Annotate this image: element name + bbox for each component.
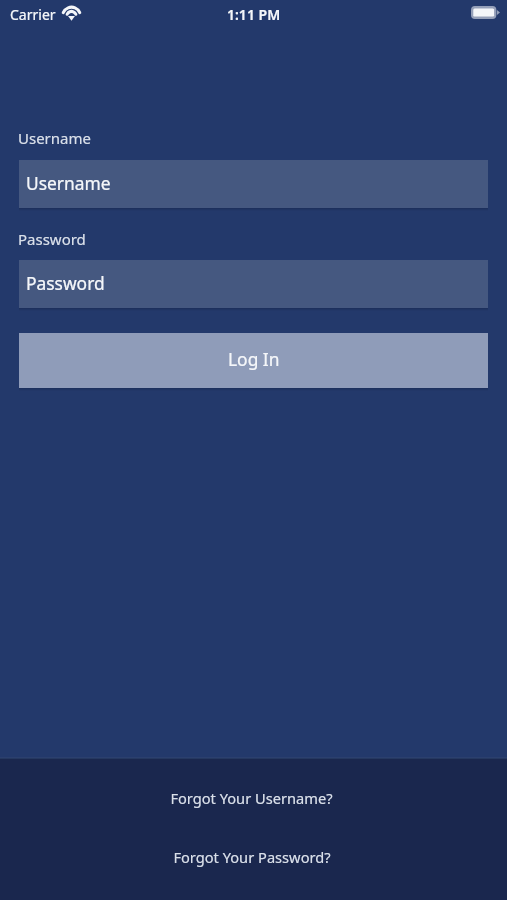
other: Wi-Fi signal: [61, 5, 82, 21]
staticText: Carrier: [10, 5, 56, 24]
staticText: Username: [18, 128, 91, 148]
other: Battery full: [471, 6, 500, 19]
staticText: Log In: [228, 347, 280, 371]
button[interactable]: Password: [19, 260, 488, 308]
staticText: 1:11 PM: [227, 5, 281, 24]
staticText: Forgot Your Username?: [170, 788, 333, 808]
button[interactable]: Forgot Your Password?: [0, 837, 505, 877]
staticText: Username: [26, 171, 111, 195]
staticText: Password: [26, 271, 105, 295]
staticText: Forgot Your Password?: [173, 847, 331, 867]
button[interactable]: Username: [19, 160, 488, 208]
button[interactable]: Forgot Your Username?: [0, 778, 505, 818]
staticText: Password: [18, 229, 86, 249]
button[interactable]: Log In: [19, 333, 488, 388]
